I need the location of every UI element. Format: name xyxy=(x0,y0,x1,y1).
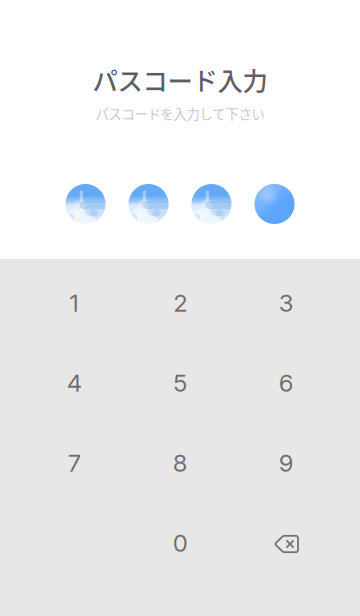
button[interactable]: 4 xyxy=(21,343,127,423)
button[interactable]: 3 xyxy=(233,263,339,343)
staticText: 0 xyxy=(173,528,188,557)
staticText: 7 xyxy=(68,448,81,477)
staticText: 9 xyxy=(279,448,294,477)
button[interactable]: 6 xyxy=(233,343,339,423)
button[interactable]: 0 xyxy=(127,503,233,583)
staticText: パスコードを入力して下さい xyxy=(95,104,264,123)
staticText: 8 xyxy=(173,448,188,477)
staticText: 5 xyxy=(173,368,187,397)
staticText: パスコード入力 xyxy=(92,61,267,98)
button[interactable]: 2 xyxy=(127,263,233,343)
button[interactable]: 5 xyxy=(127,343,233,423)
staticText: 6 xyxy=(279,368,294,397)
button[interactable]: 8 xyxy=(127,423,233,503)
staticText: 2 xyxy=(173,288,187,317)
button[interactable]: Delete xyxy=(233,503,339,583)
staticText: 4 xyxy=(67,368,82,397)
button[interactable]: 9 xyxy=(233,423,339,503)
staticText: 1 xyxy=(69,288,79,317)
button[interactable]: 7 xyxy=(21,423,127,503)
button[interactable]: 1 xyxy=(21,263,127,343)
staticText: 3 xyxy=(279,288,294,317)
